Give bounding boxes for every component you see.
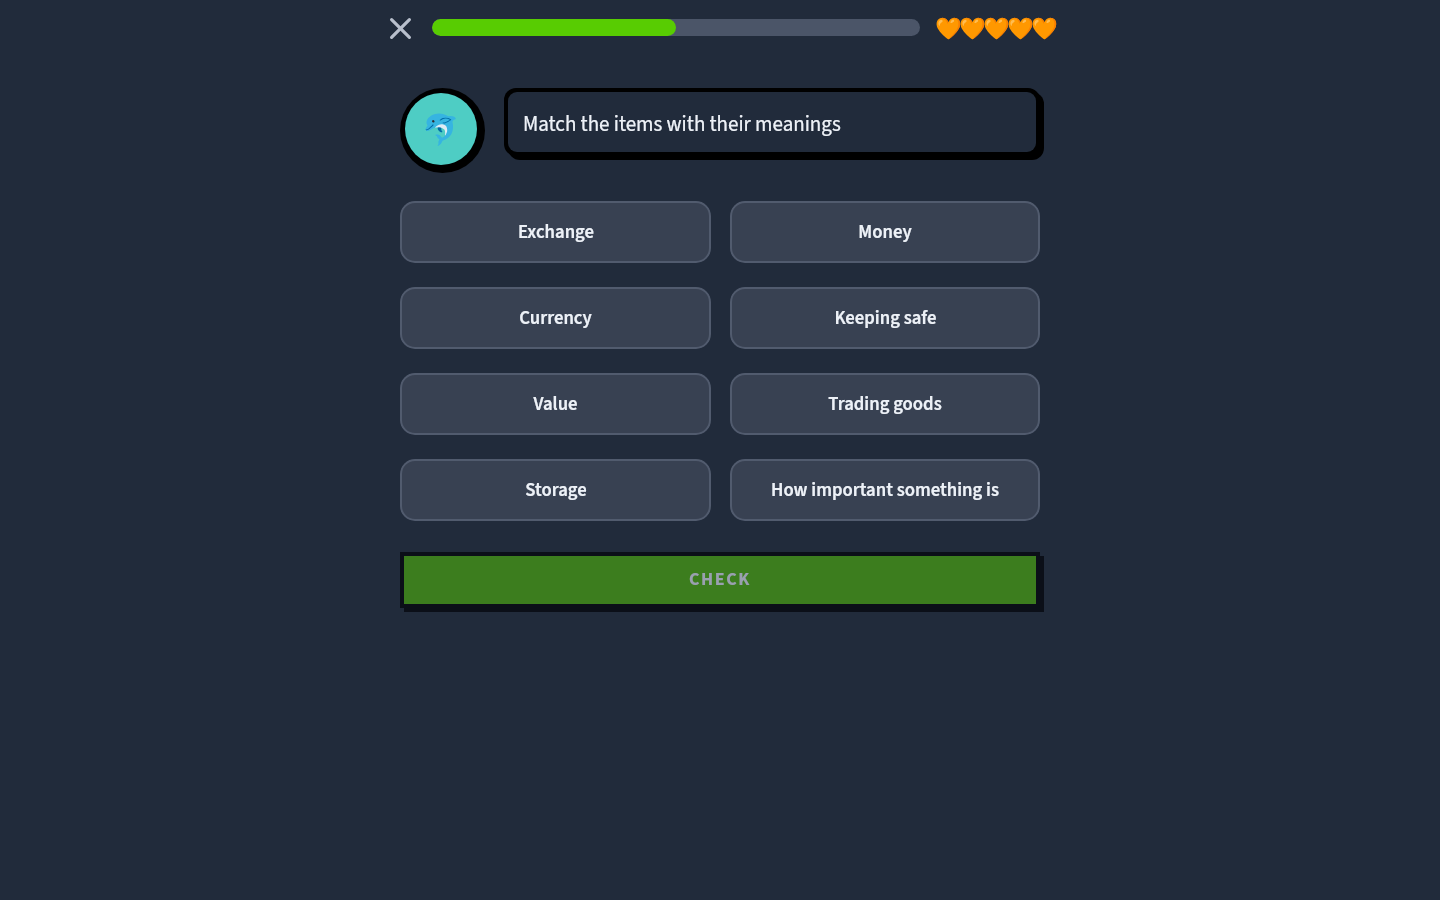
staticText: Exchange [518, 219, 594, 246]
staticText: Currency [519, 305, 592, 332]
staticText: Trading goods [828, 391, 942, 418]
staticText: CHECK [689, 567, 751, 593]
button[interactable]: Currency [400, 287, 711, 349]
staticText: 🧡 [1007, 16, 1034, 41]
button[interactable]: Value [400, 373, 711, 435]
staticText: Value [533, 391, 578, 418]
staticText: 🧡 [959, 16, 986, 41]
staticText: Match the items with their meanings [523, 109, 841, 139]
button[interactable]: Storage [400, 459, 711, 521]
staticText: 🐬 [422, 112, 460, 147]
button[interactable]: Exchange [400, 201, 711, 263]
button[interactable]: CHECK [400, 552, 1040, 608]
button[interactable]: Trading goods [730, 373, 1040, 435]
staticText: Money [858, 219, 912, 246]
staticText: 🧡 [983, 16, 1010, 41]
staticText: Storage [525, 477, 587, 504]
button[interactable]: 5 hearts remaining [933, 8, 1059, 48]
button[interactable]: Money [730, 201, 1040, 263]
staticText: 🧡 [1031, 16, 1058, 41]
staticText: Keeping safe [834, 305, 937, 332]
staticText: 🧡 [935, 16, 962, 41]
button[interactable]: How important something is [730, 459, 1040, 521]
button[interactable]: Keeping safe [730, 287, 1040, 349]
staticText: How important something is [771, 477, 999, 504]
button[interactable]: Close [380, 8, 420, 48]
